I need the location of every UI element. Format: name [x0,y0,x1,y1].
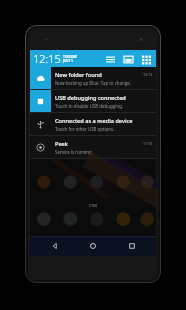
staticText: 13:13 [143,72,153,77]
button[interactable]: Peek [30,136,156,159]
button[interactable]: Notification list [104,53,116,65]
staticText: Now backing up Blue. Tap to change. [55,80,131,86]
button[interactable]: New folder found [30,67,156,90]
staticText: 11:15 [143,141,153,146]
button[interactable]: Connected as a media device [30,113,156,136]
staticText: ITM [89,203,97,209]
staticText: TUESDAY [63,55,78,59]
button[interactable]: USB debugging connected [30,90,156,113]
staticText: Touch to disable USB debugging. [55,103,124,109]
button[interactable]: Home [79,236,107,256]
button[interactable]: Recents [118,236,146,256]
staticText: Connected as a media device [55,117,133,125]
staticText: New folder found [55,71,102,79]
staticText: Touch for other USB options. [55,126,115,132]
button[interactable]: All apps [140,53,152,65]
button[interactable]: Back [41,236,69,256]
button[interactable]: Quick settings [122,53,134,65]
staticText: Service is running [55,149,92,155]
staticText: JULY 1 [63,59,73,63]
staticText: 12:15 [33,51,61,66]
staticText: USB debugging connected [55,94,126,102]
staticText: Peek [55,140,68,148]
